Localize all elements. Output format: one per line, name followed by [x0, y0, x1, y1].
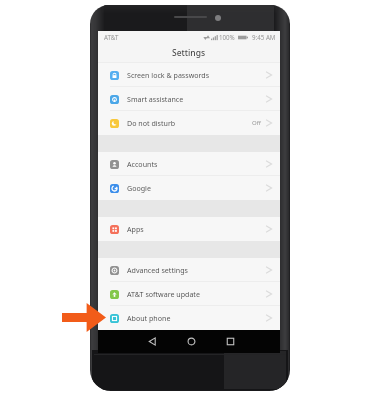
staticText: Off — [252, 119, 261, 127]
staticText: AT&T software update — [127, 289, 200, 299]
staticText: Google — [127, 183, 151, 193]
button[interactable]: Screen lock & passwords — [98, 63, 280, 87]
staticText: Apps — [127, 224, 144, 234]
staticText: 9:45 AM — [252, 33, 276, 41]
staticText: About phone — [127, 313, 171, 323]
button[interactable]: About phone — [98, 306, 280, 330]
button[interactable]: AT&T software update — [98, 282, 280, 306]
staticText: Advanced settings — [127, 265, 188, 275]
staticText: Do not disturb — [127, 118, 176, 128]
button[interactable]: Smart assistance — [98, 87, 280, 111]
staticText: Accounts — [127, 159, 158, 169]
button[interactable]: Advanced settings — [98, 258, 280, 282]
button[interactable]: Google — [98, 176, 280, 200]
staticText: Smart assistance — [127, 94, 184, 104]
button[interactable]: Apps — [98, 217, 280, 241]
button[interactable]: Do not disturb — [98, 111, 280, 135]
button[interactable]: Recents — [219, 330, 241, 353]
other: Pointer — [62, 303, 106, 332]
staticText: Screen lock & passwords — [127, 70, 210, 80]
button[interactable]: Back — [141, 330, 163, 353]
staticText: Settings — [172, 47, 206, 59]
staticText: AT&T — [104, 33, 119, 41]
button[interactable]: Accounts — [98, 152, 280, 176]
button[interactable]: Home — [180, 330, 202, 353]
staticText: 100% — [219, 33, 235, 41]
